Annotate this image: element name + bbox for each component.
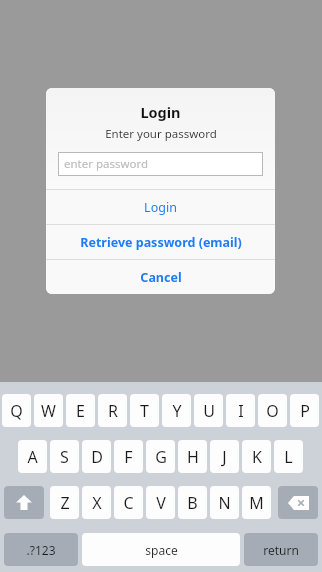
staticText: return <box>263 542 299 558</box>
staticText: E <box>76 400 85 422</box>
button[interactable]: V <box>146 486 175 519</box>
button[interactable]: Shift <box>4 486 44 519</box>
staticText: N <box>218 492 231 514</box>
staticText: V <box>156 492 166 514</box>
staticText: T <box>140 400 149 422</box>
button[interactable]: Y <box>162 394 191 427</box>
staticText: C <box>123 492 134 514</box>
staticText: F <box>124 446 133 468</box>
button[interactable]: P <box>290 394 319 427</box>
button[interactable]: return <box>244 533 318 566</box>
button[interactable]: space <box>82 533 240 566</box>
button[interactable]: Retrieve password (email) <box>46 225 275 259</box>
staticText: P <box>300 400 310 422</box>
button[interactable]: H <box>178 440 207 473</box>
staticText: A <box>27 446 38 468</box>
staticText: X <box>92 492 102 514</box>
button[interactable]: D <box>82 440 111 473</box>
staticText: B <box>187 492 198 514</box>
button[interactable]: A <box>18 440 47 473</box>
staticText: M <box>249 492 264 514</box>
button[interactable]: U <box>194 394 223 427</box>
staticText: Retrieve password (email) <box>80 234 242 251</box>
staticText: J <box>222 446 227 468</box>
staticText: Login <box>144 199 177 216</box>
button[interactable]: Q <box>2 394 31 427</box>
button[interactable]: R <box>98 394 127 427</box>
button[interactable]: enter password <box>58 152 263 176</box>
staticText: Z <box>60 492 70 514</box>
staticText: R <box>108 400 118 422</box>
button[interactable]: M <box>242 486 271 519</box>
staticText: W <box>41 400 56 422</box>
button[interactable]: Login <box>46 190 275 224</box>
button[interactable]: L <box>274 440 303 473</box>
staticText: Q <box>10 400 23 422</box>
staticText: I <box>238 400 244 422</box>
button[interactable]: Z <box>50 486 79 519</box>
button[interactable]: Cancel <box>46 260 275 294</box>
button[interactable]: B <box>178 486 207 519</box>
staticText: U <box>203 400 215 422</box>
staticText: .?123 <box>26 542 56 558</box>
staticText: space <box>145 542 178 558</box>
button[interactable]: J <box>210 440 239 473</box>
staticText: G <box>155 446 167 468</box>
staticText: O <box>266 400 279 422</box>
button[interactable]: O <box>258 394 287 427</box>
button[interactable]: W <box>34 394 63 427</box>
staticText: L <box>284 446 293 468</box>
button[interactable]: I <box>226 394 255 427</box>
staticText: Y <box>172 400 182 422</box>
button[interactable]: Backspace <box>278 486 318 519</box>
staticText: Login <box>140 102 181 122</box>
button[interactable]: G <box>146 440 175 473</box>
button[interactable]: E <box>66 394 95 427</box>
staticText: K <box>252 446 262 468</box>
button[interactable]: N <box>210 486 239 519</box>
button[interactable]: .?123 <box>4 533 78 566</box>
button[interactable]: C <box>114 486 143 519</box>
staticText: Cancel <box>140 269 182 286</box>
staticText: S <box>60 446 69 468</box>
button[interactable]: K <box>242 440 271 473</box>
button[interactable]: F <box>114 440 143 473</box>
button[interactable]: S <box>50 440 79 473</box>
button[interactable]: T <box>130 394 159 427</box>
staticText: enter password <box>64 156 149 172</box>
button[interactable]: X <box>82 486 111 519</box>
staticText: H <box>187 446 199 468</box>
staticText: Enter your password <box>105 126 217 142</box>
staticText: D <box>91 446 103 468</box>
